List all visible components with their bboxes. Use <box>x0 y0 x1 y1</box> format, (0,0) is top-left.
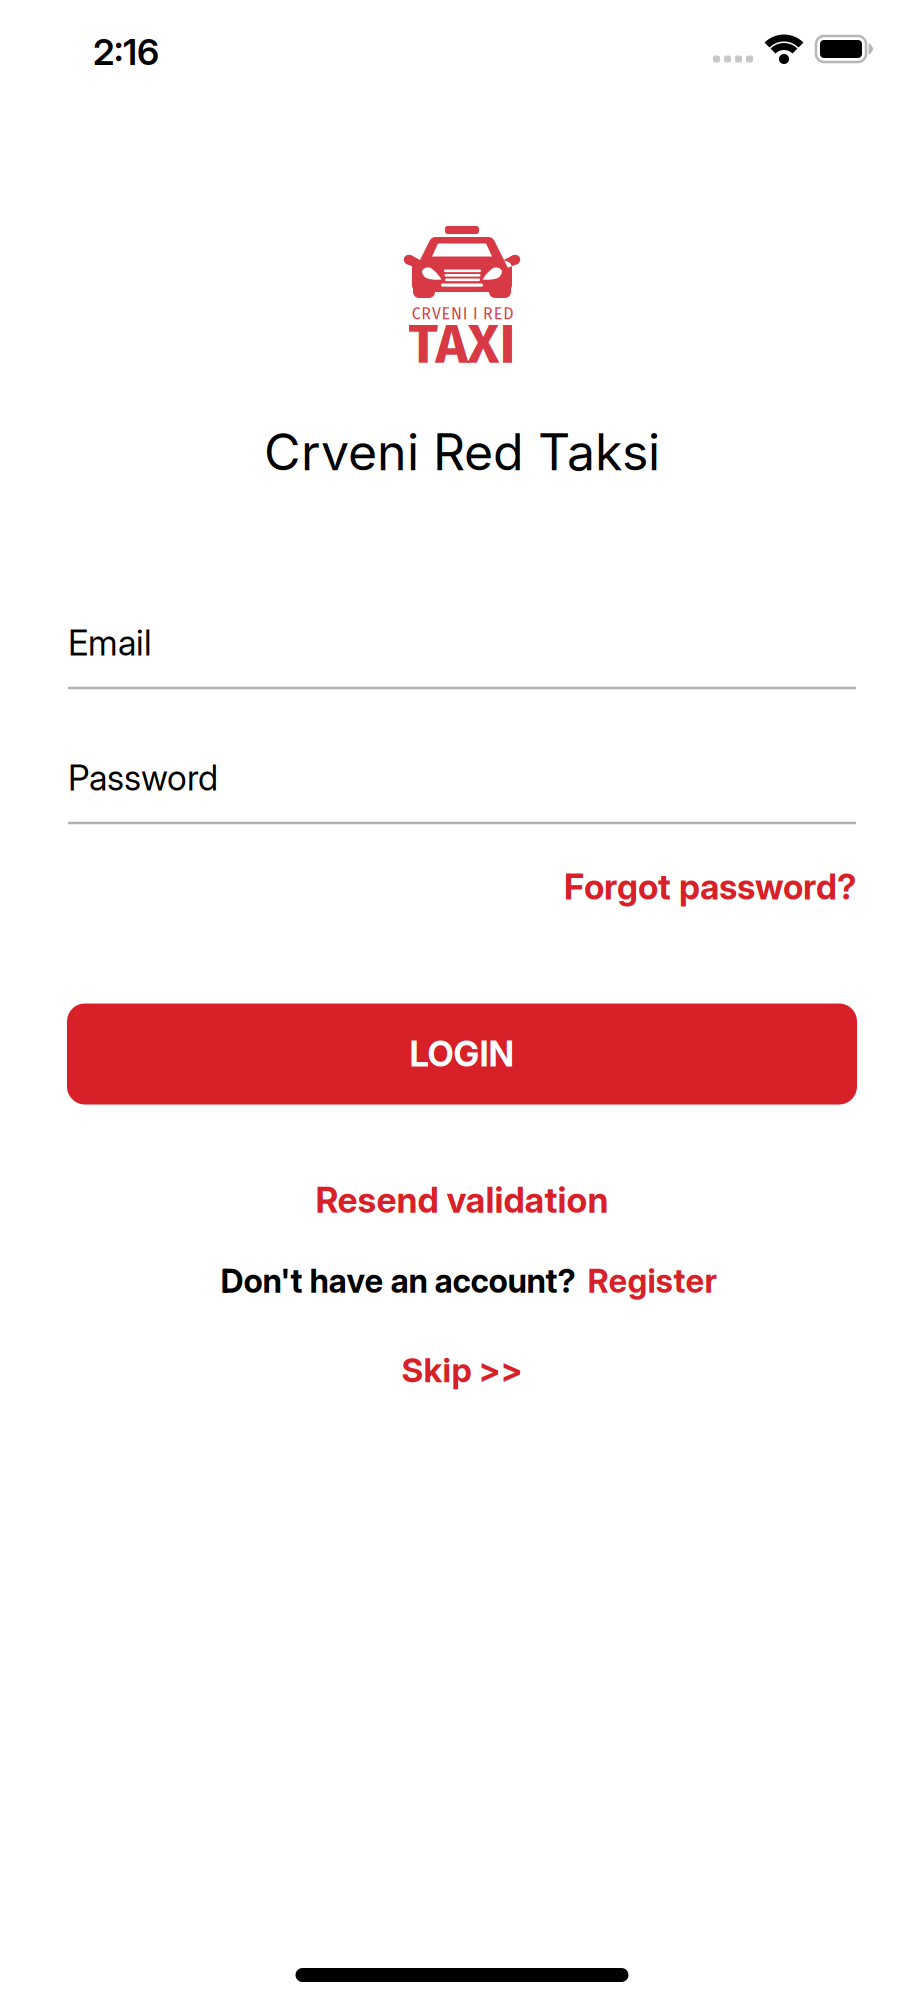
staticText: CRVENI I RED <box>412 304 513 324</box>
staticText: Don't have an account? <box>220 1261 575 1301</box>
staticText: TAXI <box>408 312 515 377</box>
button[interactable]: Resend validation <box>315 1179 608 1221</box>
button[interactable]: Forgot password? <box>564 866 856 908</box>
staticText: Register <box>587 1261 717 1301</box>
staticText: LOGIN <box>409 1033 514 1075</box>
staticText: 2:16 <box>93 30 159 74</box>
staticText: Crveni Red Taksi <box>264 422 660 482</box>
staticText: Skip >> <box>401 1350 522 1390</box>
staticText: Email <box>68 622 152 664</box>
staticText: Forgot password? <box>564 866 856 908</box>
staticText: Password <box>68 757 218 799</box>
button[interactable]: Register <box>587 1261 717 1301</box>
button[interactable]: Skip >> <box>401 1350 522 1390</box>
button[interactable]: LOGIN <box>67 1003 857 1104</box>
staticText: Resend validation <box>315 1179 608 1221</box>
